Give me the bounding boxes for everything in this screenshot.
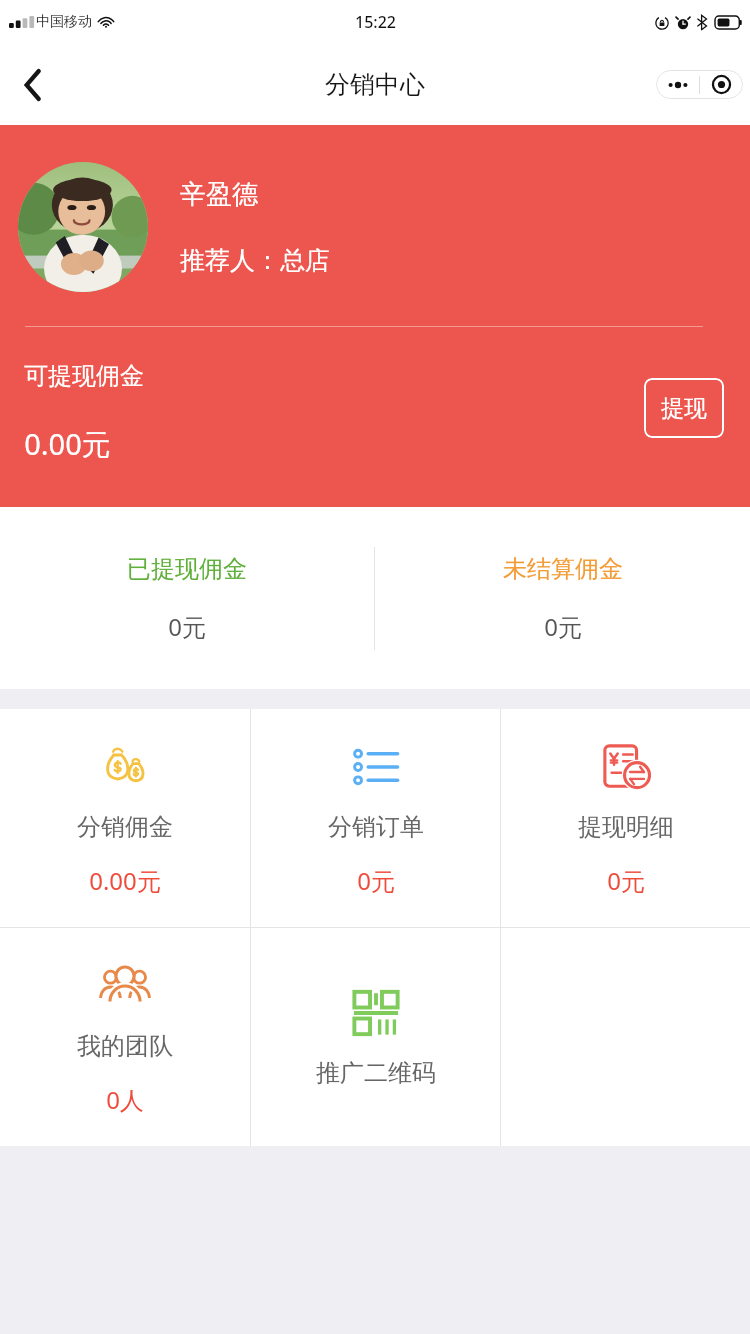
staticText: 提现: [661, 394, 707, 423]
button[interactable]: 推广二维码: [251, 928, 500, 1146]
button[interactable]: 提现明细: [501, 709, 750, 927]
button[interactable]: 我的团队: [0, 928, 250, 1146]
staticText: 0.00元: [89, 864, 161, 897]
staticText: 分销订单: [328, 812, 424, 842]
staticText: 0元: [607, 864, 645, 897]
staticText: 推荐人：总店: [180, 245, 330, 276]
button[interactable]: 已提现佣金: [0, 507, 374, 689]
staticText: 已提现佣金: [127, 554, 247, 584]
staticText: 辛盈德: [180, 178, 258, 211]
staticText: 0元: [544, 610, 582, 643]
button[interactable]: 分销佣金: [0, 709, 250, 927]
staticText: 未结算佣金: [503, 554, 623, 584]
staticText: 中国移动: [36, 13, 92, 31]
button[interactable]: 分销订单: [251, 709, 500, 927]
button[interactable]: More: [656, 70, 699, 99]
staticText: 提现明细: [578, 812, 674, 842]
staticText: 0人: [106, 1083, 144, 1116]
staticText: 我的团队: [77, 1031, 173, 1061]
staticText: 分销佣金: [77, 812, 173, 842]
button[interactable]: Close: [700, 70, 743, 99]
button[interactable]: 提现: [644, 378, 724, 438]
staticText: 分销中心: [325, 69, 425, 100]
staticText: 推广二维码: [316, 1058, 436, 1088]
staticText: 0元: [168, 610, 206, 643]
button[interactable]: Back: [6, 58, 60, 112]
staticText: 0.00元: [24, 424, 111, 464]
button[interactable]: 未结算佣金: [375, 507, 750, 689]
staticText: 可提现佣金: [24, 361, 144, 391]
staticText: 15:22: [355, 11, 396, 33]
staticText: 0元: [357, 864, 395, 897]
